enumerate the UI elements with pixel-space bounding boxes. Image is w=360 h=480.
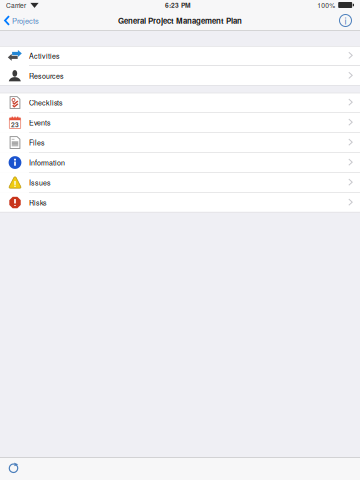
staticText: Information [29, 157, 65, 168]
button[interactable]: Activities [0, 46, 360, 66]
staticText: Issues [29, 177, 51, 188]
staticText: General Project Management Plan [118, 15, 242, 26]
button[interactable]: Projects [0, 10, 39, 31]
staticText: Events [29, 117, 51, 128]
staticText: i [344, 14, 346, 27]
staticText: Checklists [29, 97, 63, 108]
staticText: 6:23 PM [165, 0, 191, 10]
button[interactable]: 23 [0, 113, 360, 133]
button[interactable]: Files [0, 133, 360, 153]
button[interactable]: Issues [0, 173, 360, 193]
button[interactable]: Information [339, 10, 360, 31]
staticText: Projects [12, 15, 39, 26]
staticText: Activities [29, 51, 60, 61]
button[interactable]: Risks [0, 193, 360, 212]
staticText: 100% [317, 0, 335, 10]
button[interactable]: Resources [0, 66, 360, 85]
button[interactable]: Information [0, 153, 360, 173]
button[interactable]: Checklists [0, 93, 360, 113]
staticText: 23 [11, 120, 19, 129]
staticText: Files [29, 137, 45, 148]
staticText: Resources [29, 71, 64, 81]
staticText: Carrier [6, 0, 26, 10]
staticText: Risks [29, 197, 47, 208]
button[interactable]: Refresh [0, 458, 20, 480]
